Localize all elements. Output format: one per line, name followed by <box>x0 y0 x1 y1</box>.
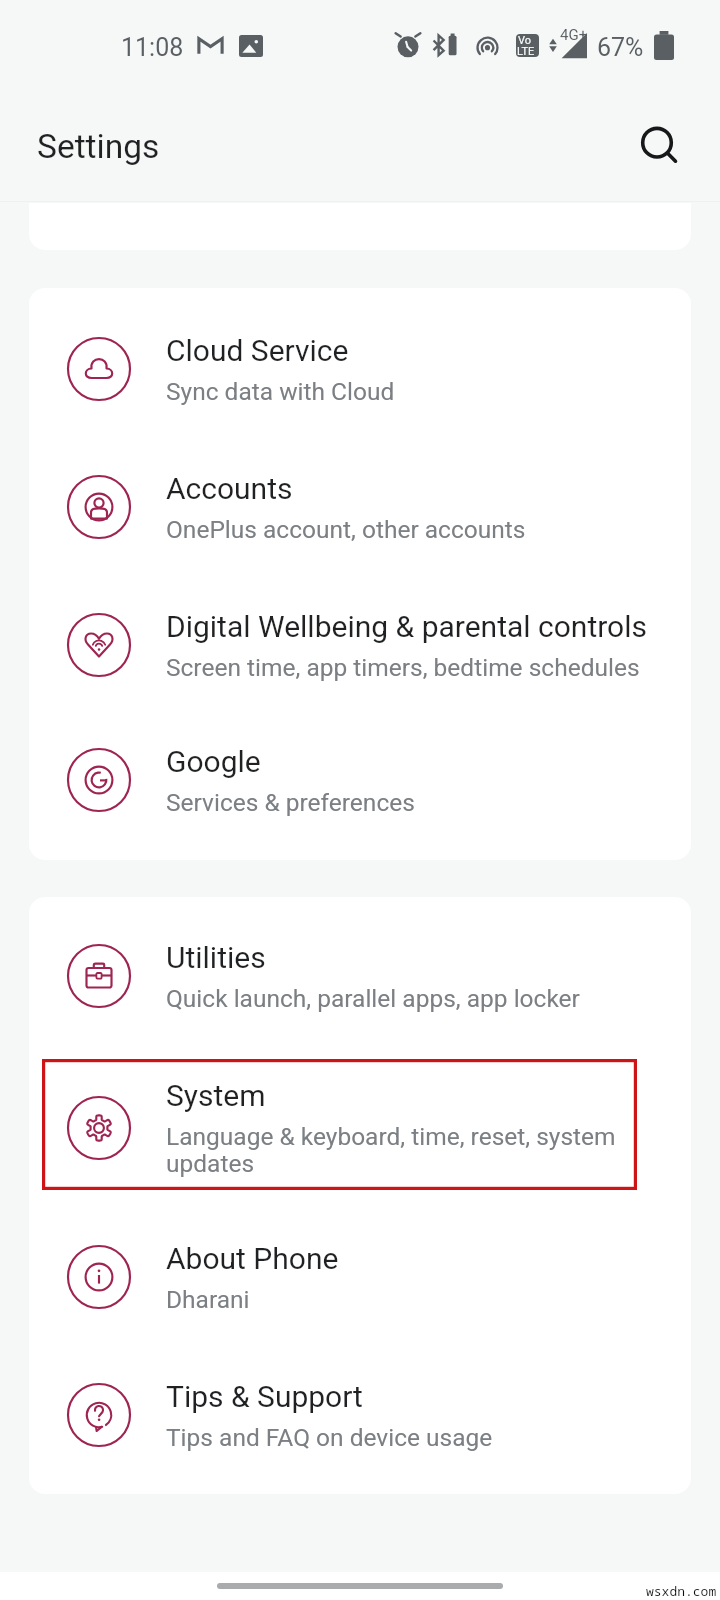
staticText: Cloud Service <box>166 333 349 368</box>
staticText: Tips and FAQ on device usage <box>166 1423 493 1452</box>
staticText: About Phone <box>166 1241 339 1276</box>
button[interactable]: Utilities <box>29 897 691 1052</box>
staticText: Utilities <box>166 940 266 975</box>
button[interactable]: Cloud Service <box>29 288 691 438</box>
staticText: 11:08 <box>121 33 184 62</box>
staticText: OnePlus account, other accounts <box>166 515 526 544</box>
staticText: Accounts <box>166 471 293 506</box>
staticText: 4G+ <box>560 26 588 44</box>
button[interactable]: Accounts <box>29 438 691 576</box>
staticText: Sync data with Cloud <box>166 377 395 406</box>
button[interactable]: Google <box>29 712 691 860</box>
staticText: Google <box>166 744 261 779</box>
staticText: Services & preferences <box>166 788 415 817</box>
staticText: LTE <box>517 45 535 57</box>
staticText: Quick launch, parallel apps, app locker <box>166 984 580 1013</box>
button[interactable]: System <box>29 1052 691 1203</box>
button[interactable]: Digital Wellbeing & parental controls <box>29 576 691 713</box>
staticText: Vo <box>518 34 532 47</box>
staticText: Language & keyboard, time, reset, system… <box>166 1122 672 1178</box>
staticText: System <box>166 1078 266 1113</box>
button[interactable]: Tips & Support <box>29 1346 691 1495</box>
staticText: 67% <box>597 33 644 62</box>
staticText: Settings <box>37 127 160 166</box>
staticText: Dharani <box>166 1285 250 1314</box>
staticText: Screen time, app timers, bedtime schedul… <box>166 653 640 682</box>
staticText: wsxdn.com <box>646 1582 717 1600</box>
button[interactable]: About Phone <box>29 1202 691 1346</box>
button[interactable]: Search <box>627 113 687 173</box>
staticText: Tips & Support <box>166 1379 363 1414</box>
staticText: Digital Wellbeing & parental controls <box>166 609 648 644</box>
